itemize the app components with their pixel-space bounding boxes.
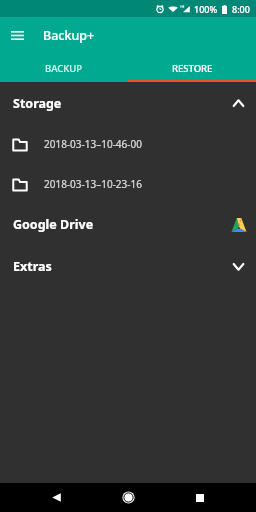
button[interactable]: Back: [42, 483, 71, 512]
staticText: Google Drive: [13, 216, 94, 233]
button[interactable]: Home: [114, 483, 143, 512]
staticText: RESTORE: [172, 62, 213, 75]
button[interactable]: Extras: [0, 245, 256, 288]
staticText: Backup+: [43, 27, 95, 44]
staticText: 2018-03-13–10-46-00: [44, 137, 142, 151]
staticText: 2018-03-13–10-23-16: [44, 177, 142, 191]
button[interactable]: RESTORE: [128, 57, 256, 82]
button[interactable]: 2018-03-13–10-23-16: [0, 164, 256, 204]
button[interactable]: Recents: [185, 483, 214, 512]
button[interactable]: Menu: [0, 17, 34, 53]
button[interactable]: 2018-03-13–10-46-00: [0, 124, 256, 164]
staticText: 8:00: [232, 3, 250, 15]
staticText: Storage: [13, 95, 62, 112]
button[interactable]: Storage: [0, 82, 256, 124]
staticText: BACKUP: [45, 62, 83, 75]
staticText: 100%: [194, 3, 218, 15]
button[interactable]: Google Drive: [0, 204, 256, 245]
staticText: Extras: [13, 258, 52, 275]
button[interactable]: BACKUP: [0, 57, 128, 82]
